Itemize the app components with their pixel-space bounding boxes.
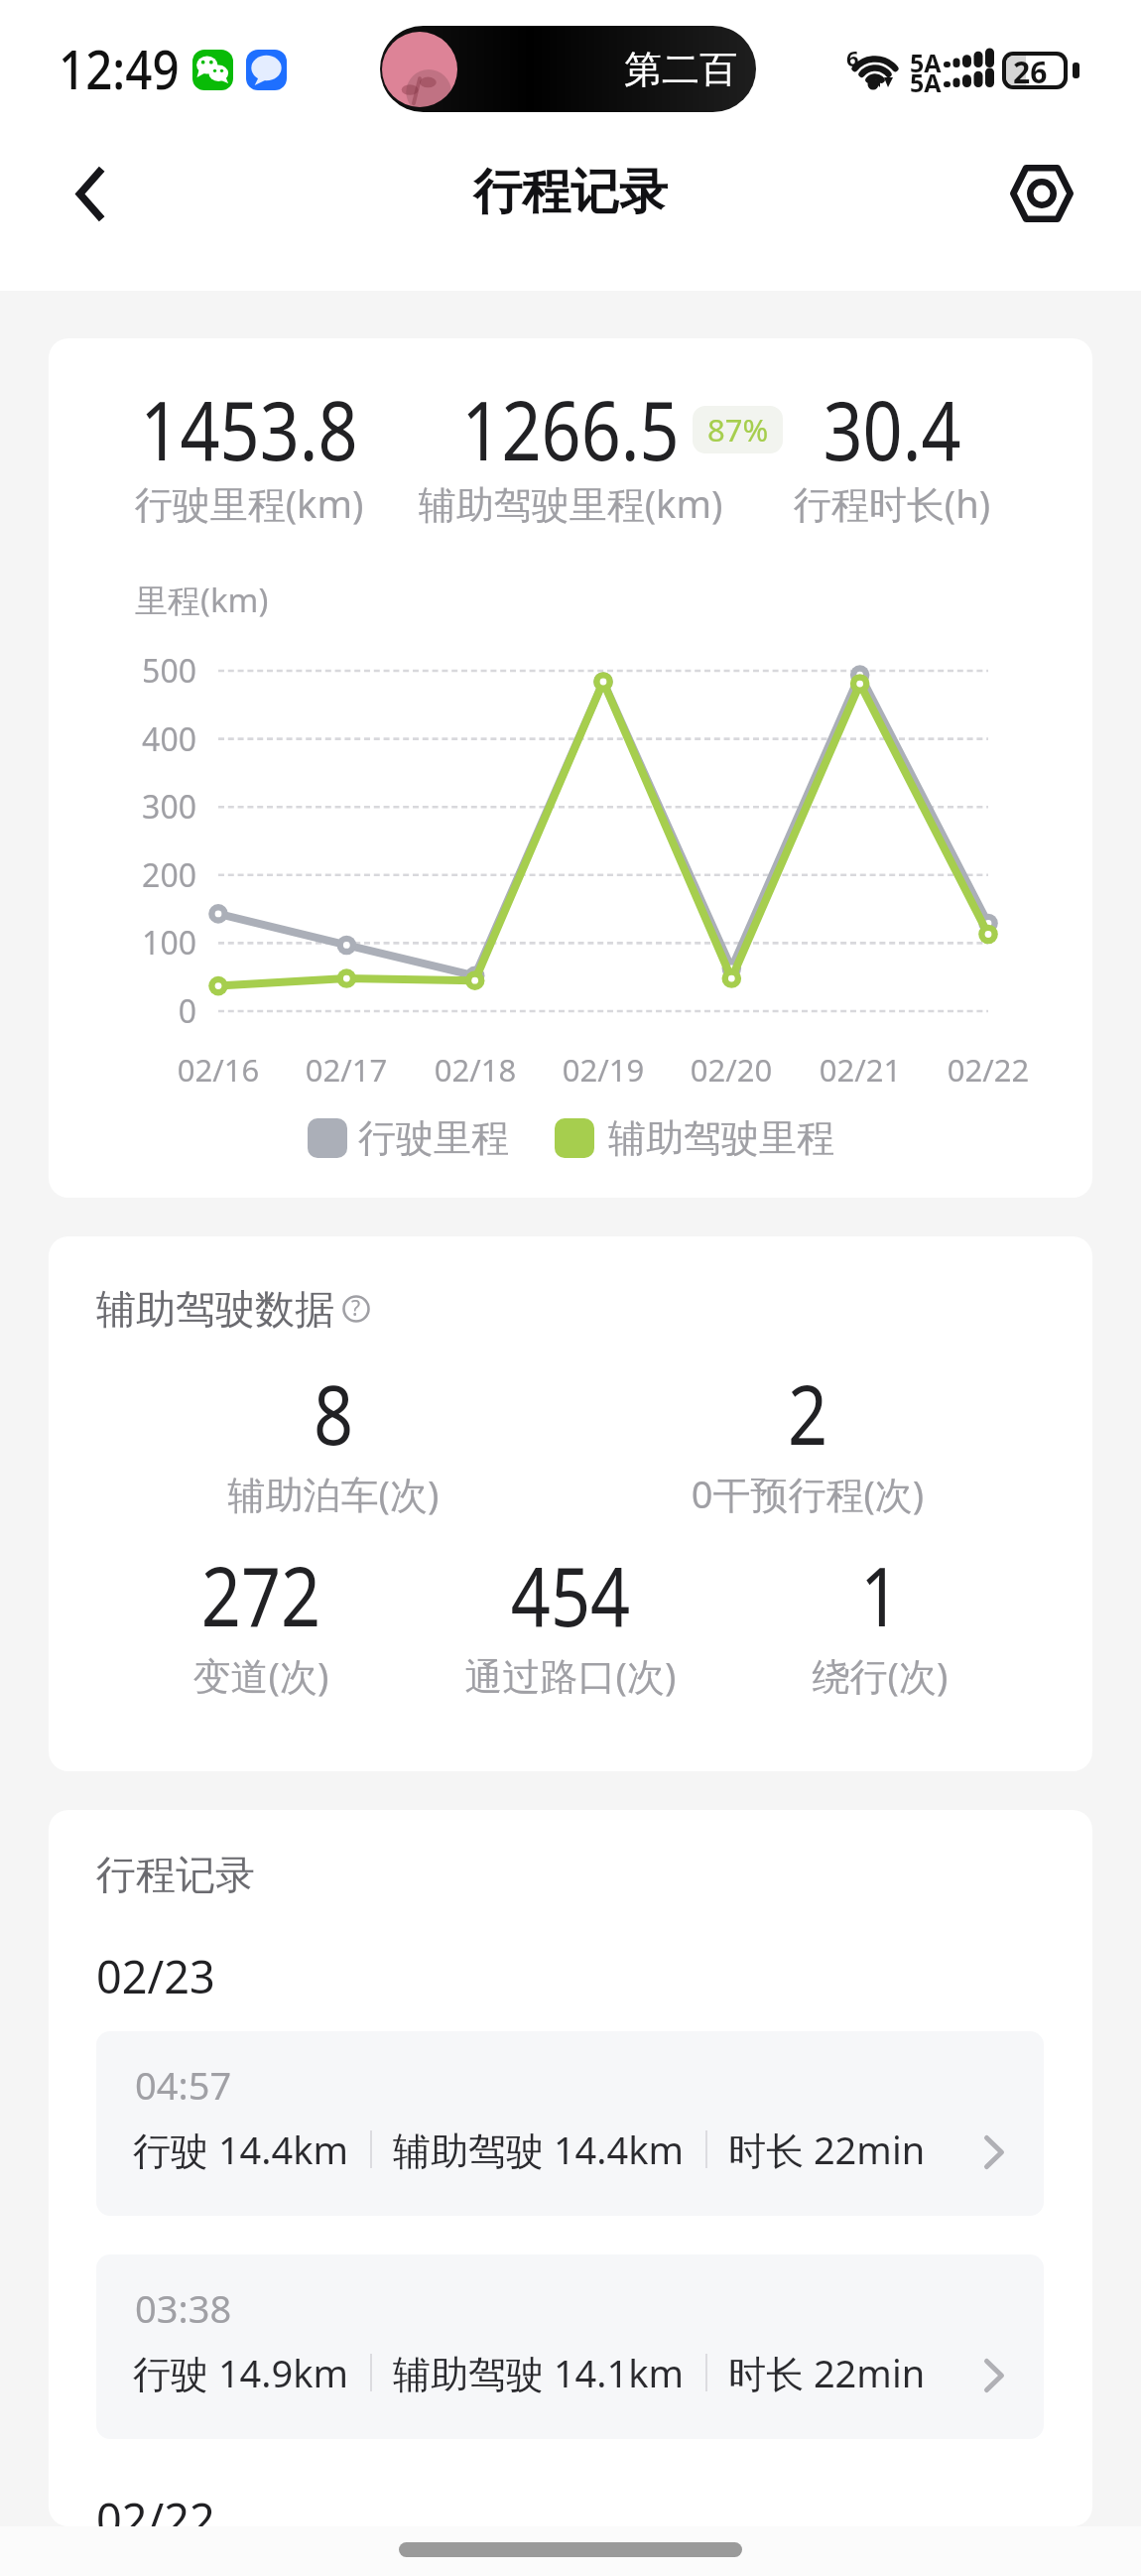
staticText: 272 bbox=[129, 1539, 393, 1650]
staticText: 02/16 bbox=[149, 1049, 288, 1091]
staticText: 通过路口(次) bbox=[416, 1649, 725, 1701]
staticText: 行驶里程 bbox=[358, 1114, 509, 1162]
staticText: 02/20 bbox=[662, 1049, 801, 1091]
staticText: 02/22 bbox=[919, 1049, 1058, 1091]
staticText: 03:38 bbox=[135, 2282, 232, 2334]
staticText: 87% bbox=[707, 409, 769, 451]
staticText: 1266.5 bbox=[433, 373, 708, 484]
staticText: 行程记录 bbox=[96, 1850, 255, 1899]
button[interactable]: Help bbox=[342, 1295, 370, 1323]
staticText: 500 bbox=[49, 649, 196, 693]
staticText: 行驶里程(km) bbox=[88, 477, 410, 529]
staticText: 绕行(次) bbox=[725, 1649, 1035, 1701]
staticText: 0 bbox=[49, 989, 196, 1033]
staticText: 辅助驾驶 14.4km bbox=[393, 2124, 685, 2175]
staticText: 02/19 bbox=[534, 1049, 673, 1091]
staticText: 0干预行程(次) bbox=[570, 1468, 1045, 1519]
staticText: 30.4 bbox=[755, 373, 1029, 484]
staticText: 里程(km) bbox=[135, 578, 269, 622]
staticText: 辅助驾驶里程 bbox=[608, 1114, 834, 1162]
staticText: 时长 22min bbox=[728, 2347, 926, 2398]
staticText: 时长 22min bbox=[728, 2124, 926, 2175]
staticText: 454 bbox=[438, 1539, 703, 1650]
staticText: 300 bbox=[49, 785, 196, 829]
staticText: 400 bbox=[49, 717, 196, 761]
staticText: 1 bbox=[748, 1539, 1012, 1650]
staticText: 行驶 14.4km bbox=[133, 2124, 349, 2175]
button[interactable]: 03:38 bbox=[96, 2254, 1044, 2439]
staticText: 100 bbox=[49, 921, 196, 965]
staticText: 辅助驾驶数据 bbox=[96, 1284, 334, 1334]
staticText: 辅助泊车(次) bbox=[96, 1468, 570, 1519]
staticText: 02/22 bbox=[96, 2489, 215, 2526]
button[interactable]: 04:57 bbox=[96, 2031, 1044, 2216]
staticText: 12:49 bbox=[59, 32, 180, 105]
staticText: 8 bbox=[131, 1357, 536, 1469]
staticText: 行程时长(h) bbox=[731, 477, 1053, 529]
staticText: 变道(次) bbox=[106, 1649, 416, 1701]
staticText: ? bbox=[351, 1294, 361, 1322]
staticText: 02/23 bbox=[96, 1946, 215, 2006]
button[interactable]: Back bbox=[40, 139, 139, 248]
staticText: 6 bbox=[846, 43, 859, 72]
staticText: 02/18 bbox=[406, 1049, 545, 1091]
staticText: 02/17 bbox=[277, 1049, 416, 1091]
staticText: 5A bbox=[910, 46, 942, 79]
staticText: 02/21 bbox=[791, 1049, 930, 1091]
staticText: 5A bbox=[910, 65, 942, 99]
staticText: 26 bbox=[1013, 52, 1048, 89]
staticText: 04:57 bbox=[135, 2059, 232, 2111]
staticText: 辅助驾驶 14.1km bbox=[393, 2347, 685, 2398]
button[interactable]: Settings bbox=[992, 139, 1091, 248]
staticText: 2 bbox=[605, 1357, 1010, 1469]
staticText: 辅助驾驶里程(km) bbox=[410, 477, 731, 529]
staticText: 行驶 14.9km bbox=[133, 2347, 349, 2398]
staticText: 200 bbox=[49, 853, 196, 897]
staticText: 行程记录 bbox=[473, 162, 668, 223]
staticText: 1453.8 bbox=[112, 373, 386, 484]
staticText: 第二百 bbox=[624, 46, 737, 93]
